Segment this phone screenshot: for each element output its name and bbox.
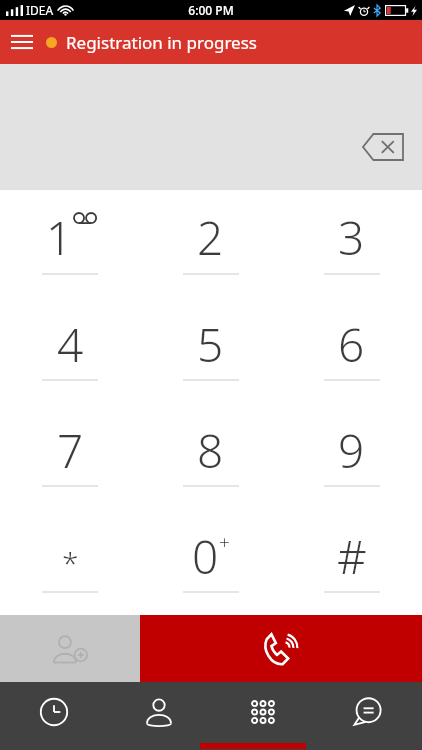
- button[interactable]: Backspace: [358, 127, 408, 167]
- staticText: IDEA: [26, 2, 54, 18]
- staticText: 6:00 PM: [188, 2, 234, 18]
- button[interactable]: Add contact: [0, 615, 140, 682]
- button[interactable]: #: [281, 509, 422, 615]
- button[interactable]: 9: [281, 403, 422, 509]
- button[interactable]: 5: [140, 297, 281, 403]
- staticText: 3: [338, 206, 365, 269]
- button[interactable]: 6: [281, 297, 422, 403]
- button[interactable]: Menu: [0, 20, 44, 64]
- button[interactable]: Dialpad: [213, 682, 313, 750]
- button[interactable]: 8: [140, 403, 281, 509]
- staticText: 7: [57, 419, 84, 482]
- staticText: #: [337, 525, 367, 588]
- staticText: 1: [46, 206, 73, 269]
- button[interactable]: Recents: [4, 682, 104, 750]
- button[interactable]: 0: [140, 509, 281, 615]
- button[interactable]: Messages: [318, 682, 418, 750]
- staticText: 6: [338, 313, 365, 376]
- button[interactable]: 3: [281, 190, 422, 297]
- button[interactable]: 2: [140, 190, 281, 297]
- staticText: Registration in progress: [66, 31, 257, 54]
- button[interactable]: 4: [0, 297, 140, 403]
- button[interactable]: Contacts: [109, 682, 209, 750]
- staticText: *: [62, 542, 79, 583]
- staticText: 0: [192, 525, 219, 588]
- button[interactable]: *: [0, 509, 140, 615]
- button[interactable]: Call: [140, 615, 422, 682]
- button[interactable]: 1: [0, 190, 140, 297]
- button[interactable]: 7: [0, 403, 140, 509]
- staticText: 2: [197, 206, 224, 269]
- staticText: +: [219, 529, 230, 555]
- staticText: 9: [338, 419, 365, 482]
- staticText: 4: [57, 313, 84, 376]
- staticText: 8: [197, 419, 224, 482]
- staticText: 5: [197, 313, 224, 376]
